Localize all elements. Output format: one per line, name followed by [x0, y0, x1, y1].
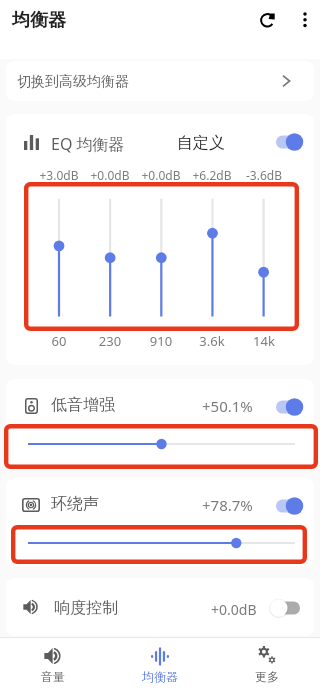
- staticText: 910: [131, 332, 191, 350]
- staticText: 60: [29, 332, 89, 350]
- staticText: 3.6k: [182, 332, 242, 350]
- staticText: 均衡器: [12, 9, 66, 32]
- button[interactable]: 更多: [213, 637, 320, 689]
- button[interactable]: Refresh: [252, 5, 282, 35]
- staticText: 自定义: [177, 133, 225, 153]
- staticText: 响度控制: [54, 598, 118, 618]
- staticText: +3.0dB: [29, 167, 89, 183]
- button[interactable]: 均衡器: [106, 637, 213, 689]
- staticText: -3.6dB: [234, 167, 294, 183]
- button[interactable]: Toggle: [270, 133, 304, 151]
- staticText: 环绕声: [51, 494, 99, 514]
- button[interactable]: 音量: [0, 637, 106, 689]
- staticText: +50.1%: [202, 396, 253, 416]
- button[interactable]: More options: [290, 5, 320, 35]
- staticText: 更多: [255, 669, 279, 684]
- staticText: 230: [80, 332, 140, 350]
- staticText: +0.0dB: [211, 600, 257, 619]
- staticText: EQ 均衡器: [51, 133, 125, 155]
- staticText: +0.0dB: [80, 167, 140, 183]
- staticText: +78.7%: [202, 495, 253, 515]
- staticText: +0.0dB: [131, 167, 191, 183]
- button[interactable]: Equalizer bands: [6, 114, 314, 365]
- staticText: 14k: [234, 332, 294, 350]
- staticText: 音量: [41, 669, 65, 684]
- button[interactable]: 切换到高级均衡器: [6, 61, 314, 101]
- staticText: 均衡器: [142, 669, 178, 684]
- button[interactable]: 低音增强: [6, 379, 314, 467]
- button[interactable]: Toggle: [270, 398, 304, 416]
- staticText: 低音增强: [51, 395, 115, 415]
- button[interactable]: Toggle: [270, 599, 304, 617]
- button[interactable]: 环绕声: [6, 478, 314, 566]
- staticText: +6.2dB: [182, 167, 242, 183]
- staticText: 切换到高级均衡器: [17, 73, 129, 91]
- button[interactable]: Toggle: [270, 497, 304, 515]
